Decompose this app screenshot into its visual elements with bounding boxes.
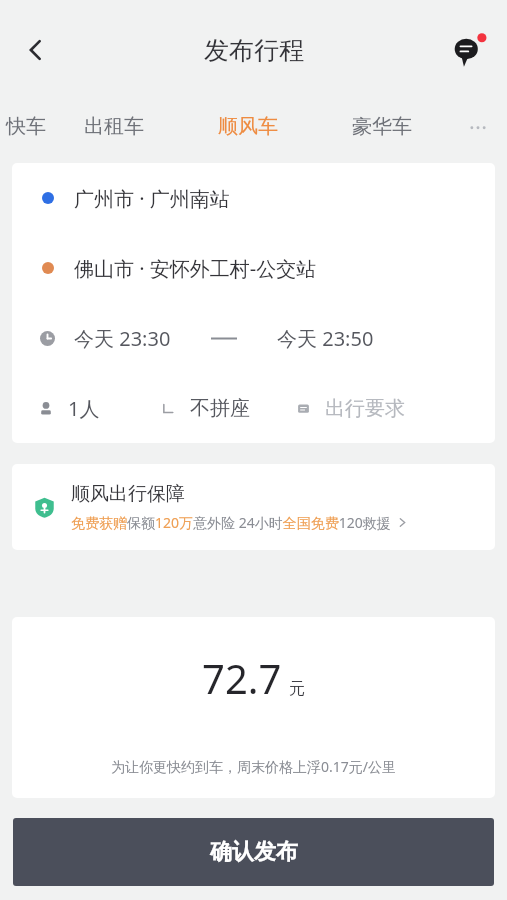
staticText: 为让你更快约到车，周末价格上浮0.17元/公里	[111, 757, 396, 776]
button[interactable]: 快车	[0, 100, 46, 152]
staticText: 确认发布	[210, 838, 298, 866]
staticText: 顺风出行保障	[71, 482, 185, 506]
button[interactable]: More car types	[449, 100, 507, 152]
staticText: 出行要求	[325, 396, 405, 421]
staticText: 佛山市 · 安怀外工村-公交站	[74, 255, 317, 282]
staticText: 72.7	[202, 651, 282, 705]
staticText: 快车	[6, 114, 46, 139]
staticText: 出租车	[84, 114, 144, 139]
staticText: 顺风车	[218, 114, 278, 139]
staticText: 1人	[68, 395, 100, 422]
button[interactable]: 佛山市 · 安怀外工村-公交站	[12, 233, 495, 303]
staticText: 今天 23:50	[277, 325, 374, 352]
button[interactable]: 不拼座	[160, 396, 250, 421]
button[interactable]: Messages	[445, 25, 495, 75]
button[interactable]: 今天 23:30	[12, 303, 495, 373]
staticText: 免费获赠保额120万意外险 24小时全国免费120救援	[71, 513, 391, 532]
staticText: 今天 23:30	[74, 325, 171, 352]
button[interactable]: 出租车	[46, 100, 181, 152]
button[interactable]: 顺风车	[181, 100, 315, 152]
button[interactable]: 确认发布	[13, 818, 494, 886]
staticText: 元	[289, 679, 305, 699]
button[interactable]: 出行要求	[296, 396, 405, 421]
button[interactable]: 顺风出行保障	[12, 464, 495, 550]
staticText: 豪华车	[352, 114, 412, 139]
button[interactable]: 广州市 · 广州南站	[12, 163, 495, 233]
staticText: 广州市 · 广州南站	[74, 185, 230, 212]
staticText: 发布行程	[204, 35, 304, 66]
button[interactable]: 豪华车	[315, 100, 449, 152]
button[interactable]: 1人	[38, 395, 100, 422]
button[interactable]: Back	[6, 21, 64, 79]
staticText: 不拼座	[190, 396, 250, 421]
